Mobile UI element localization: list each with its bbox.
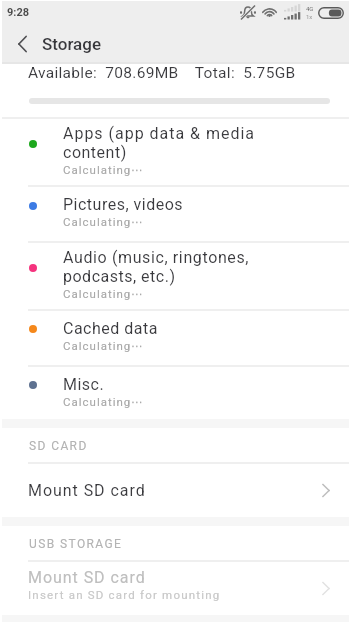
- button[interactable]: Pictures, videos: [0, 187, 350, 243]
- staticText: Cached data: [63, 319, 158, 338]
- staticText: SD CARD: [29, 439, 88, 453]
- staticText: Calculating⋯: [63, 163, 144, 176]
- staticText: 1x: [306, 13, 313, 20]
- staticText: Apps (app data & media: [63, 124, 255, 143]
- staticText: Audio (music, ringtones,: [63, 248, 250, 267]
- staticText: 4G: [306, 5, 314, 12]
- staticText: Insert an SD card for mounting: [28, 588, 221, 601]
- button[interactable]: Audio (music, ringtones,: [0, 243, 350, 311]
- staticText: Available: 708.69MB Total: 5.75GB: [28, 64, 296, 82]
- button[interactable]: Mount SD card: [0, 464, 350, 517]
- button[interactable]: Cached data: [0, 311, 350, 367]
- staticText: Pictures, videos: [63, 195, 184, 214]
- staticText: 9:28: [7, 6, 30, 19]
- staticText: Calculating⋯: [63, 287, 144, 300]
- staticText: Calculating⋯: [63, 215, 144, 228]
- staticText: content): [63, 143, 127, 162]
- staticText: Mount SD card: [28, 568, 146, 587]
- staticText: Storage: [42, 34, 102, 54]
- staticText: podcasts, etc.): [63, 267, 176, 286]
- button[interactable]: Misc.: [0, 367, 350, 419]
- button[interactable]: Mount SD card: [0, 562, 350, 615]
- button[interactable]: Apps (app data & media: [0, 119, 350, 187]
- staticText: Misc.: [63, 375, 105, 394]
- staticText: Calculating⋯: [63, 395, 144, 408]
- staticText: Calculating⋯: [63, 339, 144, 352]
- staticText: Mount SD card: [28, 481, 146, 500]
- button[interactable]: Back: [5, 24, 39, 64]
- staticText: USB STORAGE: [29, 537, 123, 551]
